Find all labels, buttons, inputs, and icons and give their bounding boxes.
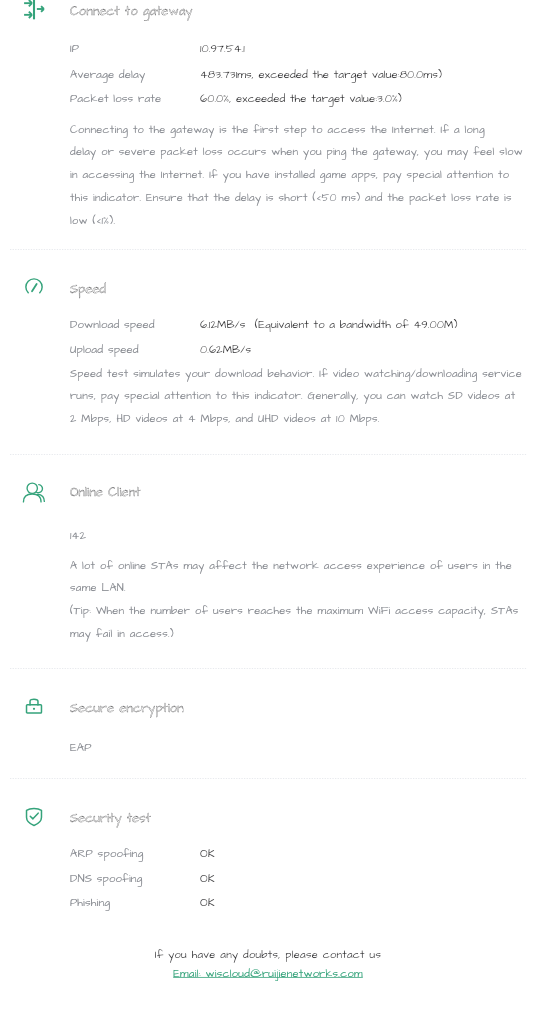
button[interactable]: Security test <box>0 807 536 831</box>
staticText: Speed test simulates your download behav… <box>70 366 523 427</box>
staticText: OK <box>200 895 215 911</box>
button[interactable]: Secure encryption <box>0 697 536 721</box>
staticText: Average delay <box>70 67 146 83</box>
staticText: 142 <box>70 528 87 544</box>
staticText: EAP <box>70 740 92 756</box>
staticText: IP <box>70 41 80 57</box>
button[interactable]: Speed <box>0 278 536 302</box>
staticText: Packet loss rate <box>70 91 162 107</box>
staticText: If you have any doubts, please contact u… <box>0 947 536 962</box>
other: Security test <box>23 805 45 827</box>
staticText: DNS spoofing <box>70 871 143 887</box>
button[interactable]: Online Client <box>0 481 536 505</box>
button[interactable]: Connect to gateway <box>0 0 536 24</box>
staticText: 483.731ms, exceeded the target value:80.… <box>200 67 442 83</box>
staticText: OK <box>200 846 215 862</box>
staticText: 6.12MB/s (Equivalent to a bandwidth of 4… <box>200 317 458 333</box>
other: Speed <box>23 276 45 298</box>
staticText: ARP spoofing <box>70 846 144 862</box>
staticText: 60.0%, exceeded the target value:3.0%) <box>200 91 402 107</box>
other: Connect to gateway <box>23 0 45 20</box>
staticText: Connect to gateway <box>70 3 193 20</box>
staticText: Security test <box>70 810 152 827</box>
button[interactable]: Email: wiscloud@ruijienetworks.com <box>173 966 363 981</box>
staticText: Speed <box>70 281 107 298</box>
other: Secure encryption <box>23 695 45 717</box>
staticText: 10.97.54.1 <box>200 41 245 57</box>
other: Online Client <box>23 479 45 501</box>
staticText: Upload speed <box>70 342 139 358</box>
staticText: Connecting to the gateway is the first s… <box>70 122 523 229</box>
staticText: Download speed <box>70 317 155 333</box>
staticText: Phishing <box>70 895 111 911</box>
staticText: Secure encryption <box>70 700 184 717</box>
staticText: 0.62MB/s <box>200 342 252 358</box>
staticText: Online Client <box>70 484 141 501</box>
staticText: OK <box>200 871 215 887</box>
staticText: A lot of online STAs may affect the netw… <box>70 558 519 642</box>
